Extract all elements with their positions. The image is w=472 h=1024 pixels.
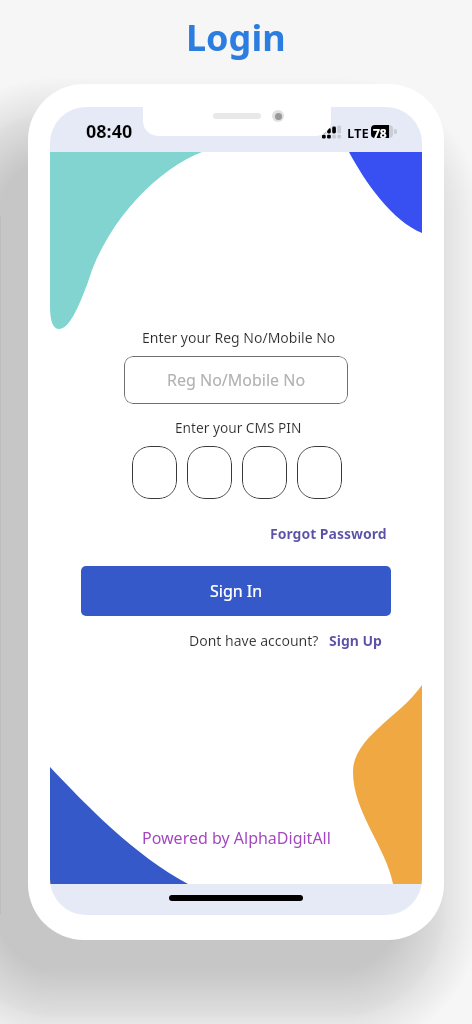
button[interactable]: Sign Up: [329, 631, 382, 650]
staticText: Dont have account?: [189, 631, 319, 650]
staticText: Enter your CMS PIN: [175, 418, 302, 437]
staticText: LTE: [347, 124, 369, 142]
staticText: Sign In: [210, 580, 263, 602]
button[interactable]: [132, 446, 177, 499]
button[interactable]: Reg No/Mobile No: [124, 356, 348, 404]
button[interactable]: [242, 446, 287, 499]
button[interactable]: Forgot Password: [270, 524, 387, 543]
staticText: 78: [373, 125, 387, 138]
button[interactable]: [297, 446, 342, 499]
staticText: Login: [186, 13, 286, 62]
staticText: Enter your Reg No/Mobile No: [142, 328, 336, 347]
staticText: Reg No/Mobile No: [167, 369, 306, 391]
button[interactable]: Sign In: [81, 566, 391, 616]
button[interactable]: [187, 446, 232, 499]
staticText: 08:40: [86, 119, 133, 144]
staticText: Powered by AlphaDigitAll: [142, 827, 331, 849]
